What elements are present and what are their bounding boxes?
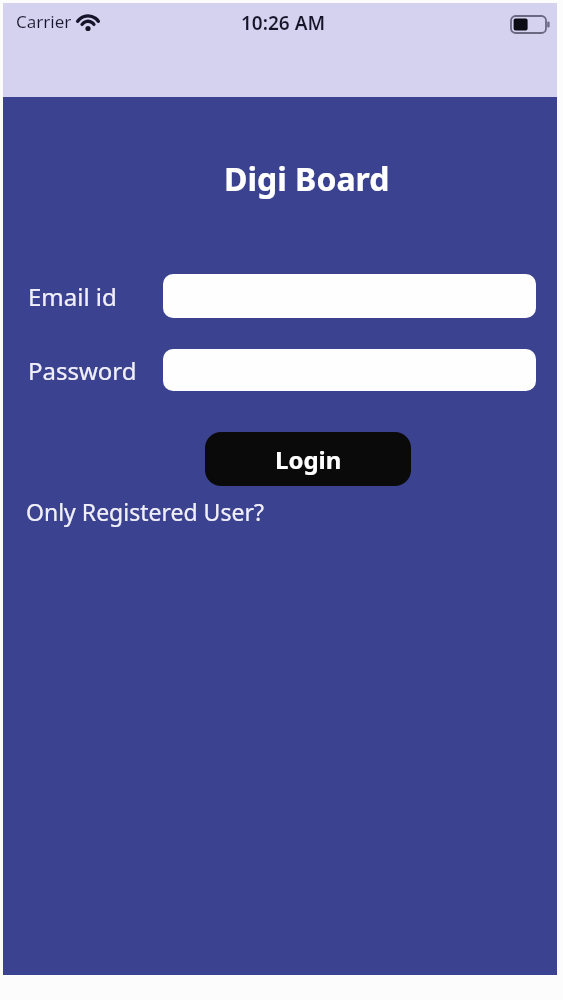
button[interactable] [163,274,536,318]
button[interactable]: Login [205,432,411,486]
button[interactable] [163,349,536,391]
staticText: Carrier [16,10,72,33]
button[interactable]: Only Registered User? [26,496,264,527]
staticText: Login [275,443,342,476]
staticText: Email id [28,280,117,313]
staticText: 10:26 AM [241,10,326,36]
staticText: Digi Board [224,157,390,201]
staticText: Password [28,354,137,387]
